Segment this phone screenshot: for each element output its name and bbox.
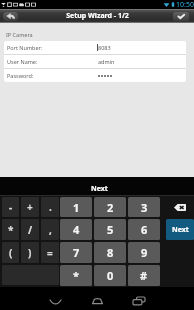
button[interactable]: 3 [128,197,160,217]
button[interactable]: 1 [60,197,92,217]
button[interactable]: # [128,265,160,286]
staticText: User Name: [7,58,38,65]
button[interactable]: 7 [60,242,92,263]
button[interactable]: Backspace [166,197,194,217]
staticText: # [140,268,148,283]
staticText: , [49,223,52,237]
button[interactable]: . [41,197,59,217]
staticText: - [9,200,13,214]
staticText: 7 [73,245,80,260]
staticText: 2 [107,200,114,215]
button[interactable]: 9 [128,242,160,263]
button[interactable]: + [21,197,39,217]
button[interactable]: 2 [94,197,126,217]
staticText: 4 [73,222,80,237]
staticText: ( [9,246,13,260]
staticText: = [47,246,53,260]
button[interactable]: 4 [60,219,92,240]
button[interactable]: - [2,197,19,217]
staticText: ) [28,246,32,260]
button[interactable]: Recents [123,287,155,310]
button[interactable]: User Name: [4,55,186,68]
button[interactable]: Done [173,12,189,21]
button[interactable]: Port Number: [4,41,186,54]
button[interactable]: 8 [94,242,126,263]
staticText: Setup Wizard - 1/2 [66,11,129,21]
staticText: 3 [141,200,148,215]
staticText: admin [98,58,115,65]
button[interactable]: ) [21,242,39,263]
button[interactable]: * [60,265,92,286]
button[interactable]: Back [3,12,18,21]
button[interactable]: , [41,219,59,240]
button[interactable]: 0 [94,265,126,286]
button[interactable]: * [2,219,19,240]
button[interactable]: 5 [94,219,126,240]
button[interactable]: Home [81,287,113,310]
button[interactable]: / [21,219,39,240]
staticText: Port Number: [7,44,43,51]
button[interactable]: = [41,242,59,263]
button[interactable]: Back [39,287,71,310]
staticText: . [49,200,52,214]
staticText: 0 [107,268,114,283]
staticText: 9 [141,245,148,260]
button[interactable]: ( [2,242,19,263]
staticText: 5 [107,222,114,237]
staticText: / [28,223,33,237]
staticText: 1 [73,200,80,215]
staticText: 8083 [98,44,111,51]
button[interactable]: Next [166,219,194,240]
staticText: 6 [141,222,148,237]
staticText: Password: [7,72,34,79]
staticText: IP Camera [6,31,33,38]
button[interactable]: 6 [128,219,160,240]
staticText: * [8,223,14,237]
staticText: + [27,200,33,214]
staticText: 10:50 [176,0,194,9]
staticText: 8 [107,245,114,260]
staticText: Next [172,225,189,235]
staticText: Next [91,184,108,194]
button[interactable]: Password: [4,69,186,82]
staticText: * [73,268,79,283]
